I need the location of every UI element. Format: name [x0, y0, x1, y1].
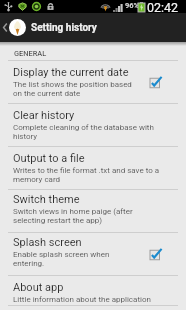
staticText: About app	[13, 281, 64, 294]
button[interactable]: Display the current date	[0, 61, 186, 104]
staticText: 96%	[125, 1, 140, 10]
staticText: Splash screen	[13, 236, 82, 249]
staticText: Clear history	[13, 109, 75, 122]
staticText: Enable splash screen when entering.	[13, 250, 110, 268]
staticText: Setting history	[31, 22, 97, 34]
staticText: The list shows the position based on the…	[13, 80, 132, 98]
button[interactable]: Navigate up	[0, 13, 9, 42]
staticText: 02:42	[147, 0, 179, 13]
button[interactable]: About app	[0, 276, 186, 306]
staticText: Switch theme	[13, 193, 80, 206]
staticText: GENERAL	[14, 49, 47, 58]
button[interactable]: Output to a file	[0, 147, 186, 190]
staticText: Little information about the application	[13, 295, 151, 304]
staticText: Display the current date	[13, 66, 129, 79]
button[interactable]: Splash screen	[0, 233, 186, 276]
button[interactable]: Switch theme	[0, 190, 186, 233]
button[interactable]: Clear history	[0, 104, 186, 147]
staticText: Output to a file	[13, 152, 85, 165]
staticText: Complete cleaning of the database with h…	[13, 123, 154, 141]
staticText: Switch views in home paige (after select…	[13, 207, 133, 225]
staticText: Writes to the file format .txt and save …	[13, 166, 160, 184]
